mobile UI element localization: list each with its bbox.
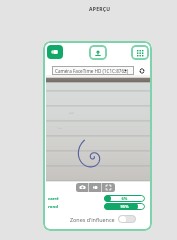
staticText: carré	[48, 196, 59, 202]
button[interactable]: Action	[131, 45, 149, 60]
staticText: rond	[48, 204, 58, 210]
staticText: Zones d'influence	[70, 216, 115, 223]
staticText: Caméra FaceTime HD (1C1C:8762)	[55, 68, 129, 74]
button[interactable]: Full screen	[102, 183, 114, 192]
staticText: 6%	[104, 196, 145, 201]
button[interactable]: 6%	[104, 195, 145, 202]
button[interactable]: Record video	[89, 183, 101, 192]
button[interactable]: Caméra FaceTime HD (1C1C:8762)	[52, 66, 134, 75]
button[interactable]: Refresh camera list	[136, 65, 147, 76]
button[interactable]: Action	[89, 45, 107, 60]
staticText: APERÇU	[89, 6, 111, 13]
button[interactable]: 95%	[104, 203, 145, 210]
button[interactable]: Action	[47, 45, 63, 59]
button[interactable]: Take photo	[76, 183, 88, 192]
button[interactable]: Zones d'influence	[70, 215, 136, 223]
staticText: 95%	[104, 204, 145, 209]
